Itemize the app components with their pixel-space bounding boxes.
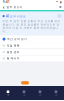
staticText: 작업 목록	[7, 44, 20, 47]
staticText: •• ▮	[56, 0, 61, 4]
button[interactable]: More	[59, 6, 61, 8]
button[interactable]: 일정 관리	[0, 49, 64, 55]
button[interactable]: Status	[21, 81, 29, 84]
staticText: 이번 주 업무 진행 상황과 주요 성과를 정리했습니다. 팀 목표 달성률은 …	[2, 19, 60, 33]
staticText: 일정 관리	[7, 50, 20, 54]
button[interactable]: 홈	[0, 88, 16, 97]
button[interactable]: 일정	[32, 88, 48, 97]
staticText: 주간 요약 보기	[7, 37, 27, 41]
button[interactable]: 작업 목록	[0, 43, 64, 49]
staticText: 작업	[23, 94, 25, 95]
staticText: 9:41	[3, 0, 10, 4]
staticText: 일정	[39, 94, 41, 95]
button[interactable]: 작업	[16, 88, 32, 97]
staticText: ‹	[3, 3, 5, 11]
button[interactable]: 팀 메시지	[0, 55, 64, 61]
button[interactable]: Back	[2, 3, 5, 11]
staticText: AI 요약 리포트	[6, 14, 26, 18]
button[interactable]: 주간 요약 보기	[0, 36, 64, 43]
staticText: 팀 메시지	[7, 57, 20, 60]
staticText: 설정	[55, 94, 57, 95]
staticText: 업무 보고서	[6, 5, 22, 9]
button[interactable]: 설정	[48, 88, 64, 97]
